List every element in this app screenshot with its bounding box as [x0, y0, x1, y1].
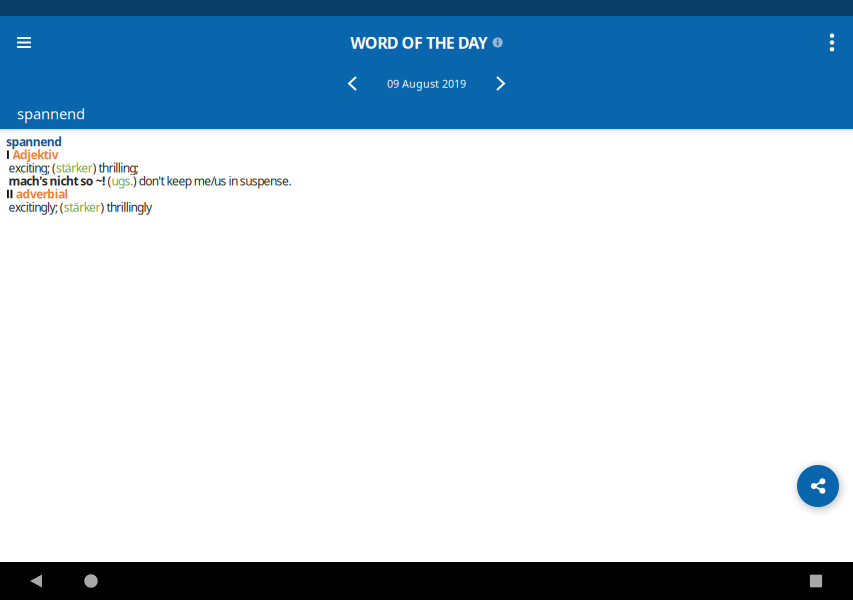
button[interactable]: Recent apps — [796, 562, 836, 600]
button[interactable]: Share — [797, 465, 839, 507]
staticText: WORD OF THE DAY — [350, 32, 488, 53]
staticText: ) thrilling; — [93, 160, 139, 176]
staticText: ) don't keep me/us in suspense. — [133, 173, 291, 189]
button[interactable]: More options — [811, 17, 853, 67]
button[interactable]: Previous day — [330, 68, 374, 98]
staticText: spannend — [17, 104, 85, 123]
staticText: ( — [108, 173, 112, 189]
staticText: mach's nicht so ~! — [6, 173, 108, 189]
staticText: stärker — [56, 160, 93, 176]
staticText: ) thrillingly — [101, 199, 152, 215]
staticText: spannend — [6, 134, 62, 149]
staticText: stärker — [64, 199, 101, 215]
button[interactable]: Next day — [478, 68, 522, 98]
staticText: 09 August 2019 — [387, 76, 466, 91]
button[interactable]: Home — [55, 562, 127, 600]
staticText: adverbial — [16, 186, 69, 202]
staticText: excitingly; ( — [6, 199, 64, 215]
staticText: Adjektiv — [12, 147, 59, 163]
button[interactable]: Back — [17, 562, 55, 600]
staticText: exciting; ( — [6, 160, 56, 176]
button[interactable]: Open navigation menu — [0, 17, 48, 67]
staticText: ugs. — [112, 173, 133, 189]
